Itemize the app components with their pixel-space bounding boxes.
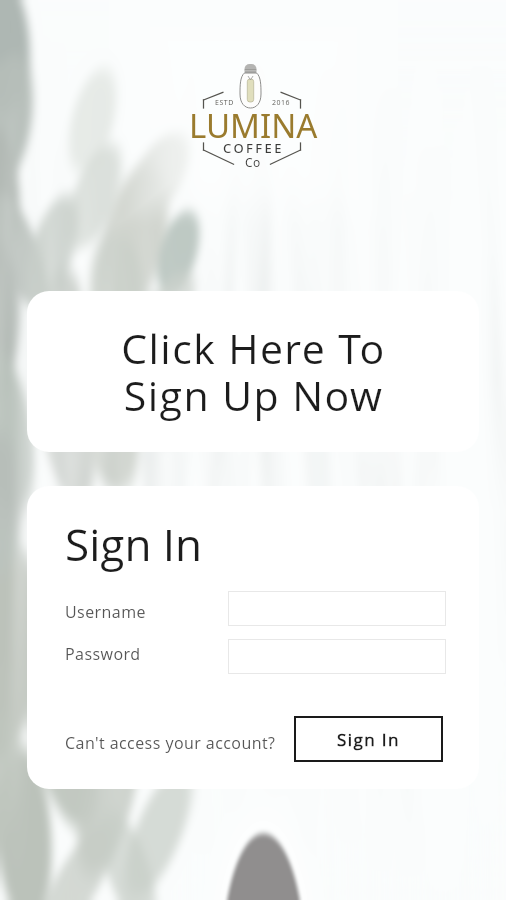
button[interactable]: Password <box>228 639 446 674</box>
staticText: Co <box>245 154 261 170</box>
staticText: Username <box>65 601 146 623</box>
button[interactable]: Username <box>228 591 446 626</box>
staticText: Sign In <box>65 514 203 574</box>
button[interactable]: Click Here To Sign Up Now <box>27 291 479 452</box>
button[interactable]: Can't access your account? <box>65 732 276 754</box>
button[interactable]: Sign In <box>294 716 443 762</box>
staticText: 2016 <box>272 98 291 108</box>
staticText: COFFEE <box>223 139 284 157</box>
staticText: LUMINA <box>189 103 318 148</box>
staticText: ESTD <box>215 98 234 108</box>
staticText: Sign In <box>337 728 400 751</box>
staticText: Click Here To Sign Up Now <box>121 320 386 423</box>
staticText: Password <box>65 643 141 665</box>
